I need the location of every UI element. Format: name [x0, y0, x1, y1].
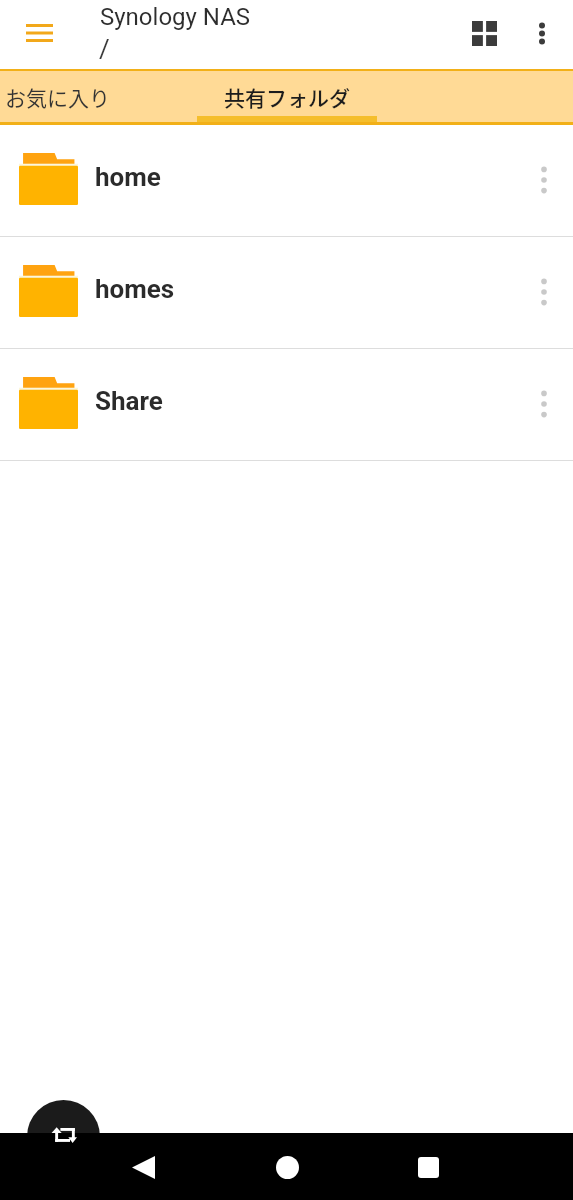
button[interactable]: Item options	[521, 270, 567, 316]
staticText: home	[95, 162, 161, 192]
staticText: homes	[95, 274, 175, 304]
button[interactable]: Item options	[521, 158, 567, 204]
button[interactable]: Share	[0, 349, 573, 460]
staticText: Synology NAS	[100, 3, 251, 31]
button[interactable]: お気に入り	[0, 71, 197, 122]
button[interactable]: home	[0, 125, 573, 236]
button[interactable]: Menu	[14, 8, 64, 58]
button[interactable]: More options	[519, 12, 565, 58]
button[interactable]: Home	[263, 1143, 311, 1191]
button[interactable]: homes	[0, 237, 573, 348]
staticText: お気に入り	[5, 82, 110, 112]
button[interactable]: Back	[119, 1143, 167, 1191]
button[interactable]: Sync	[27, 1100, 100, 1173]
button[interactable]: Grid view	[461, 10, 507, 56]
staticText: /	[99, 34, 110, 64]
button[interactable]: Recent apps	[404, 1143, 452, 1191]
staticText: Share	[95, 386, 163, 416]
button[interactable]: Item options	[521, 382, 567, 428]
staticText: 共有フォルダ	[224, 82, 350, 112]
button[interactable]: 共有フォルダ	[197, 71, 377, 122]
